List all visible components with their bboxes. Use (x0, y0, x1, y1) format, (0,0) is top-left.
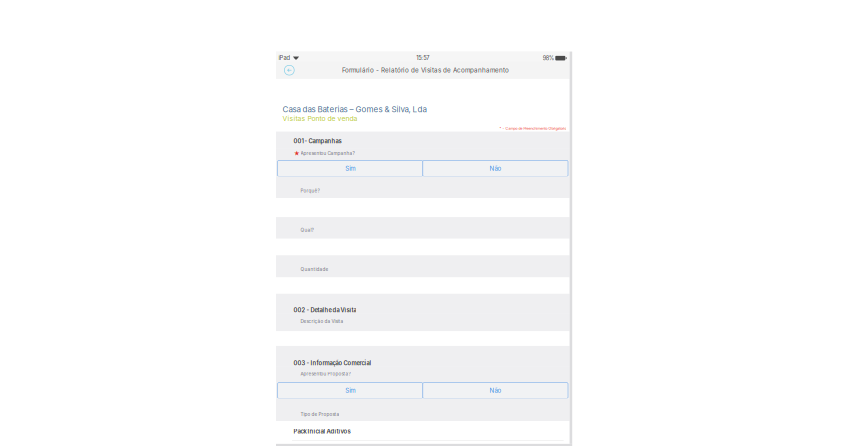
staticText: 15:57 (416, 54, 429, 61)
staticText: Descrição da Visita (300, 319, 343, 324)
staticText: Qual? (300, 227, 313, 233)
staticText: Pack Inicial Aditivos (293, 428, 350, 435)
staticText: Porquê? (300, 188, 319, 194)
staticText: Não (489, 387, 501, 394)
staticText: Sim (345, 165, 355, 172)
button[interactable]: Não (423, 160, 568, 176)
staticText: 001 - Campanhas (293, 138, 341, 145)
staticText: Visitas Ponto de venda (282, 114, 357, 123)
staticText: Apresentou Proposta? (300, 371, 350, 377)
staticText: Formulário - Relatório de Visitas de Aco… (342, 66, 509, 74)
staticText: ★ (294, 150, 300, 157)
button[interactable]: Sim (278, 160, 423, 176)
staticText: Não (489, 165, 501, 172)
button[interactable]: Não (423, 383, 568, 398)
staticText: Tipo de Proposta (300, 411, 339, 417)
button[interactable]: Back (276, 62, 302, 78)
staticText: 003 - Informação Comercial (293, 360, 371, 367)
staticText: Apresentou Campanha? (301, 150, 355, 156)
button[interactable]: Sim (278, 383, 423, 398)
staticText: 98% (543, 55, 554, 61)
staticText: Quantidade (300, 267, 328, 272)
staticText: iPad (279, 54, 291, 61)
staticText: 002 - Detalhe da Visita (293, 307, 356, 314)
staticText: * - Campo de Preenchimento Obrigatorio (499, 126, 566, 131)
staticText: Sim (345, 387, 355, 394)
staticText: Casa das Baterias – Gomes & Silva, Lda (282, 104, 426, 114)
